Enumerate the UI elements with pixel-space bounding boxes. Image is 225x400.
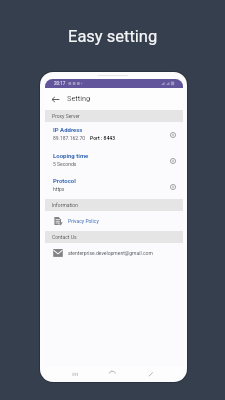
staticText: Proxy Server	[52, 113, 80, 119]
staticText: Privacy Policy	[68, 218, 99, 224]
button[interactable]: Edit IP Address	[162, 122, 183, 148]
staticText: https	[53, 186, 65, 192]
staticText: Setting	[67, 94, 91, 103]
staticText: 5 Seconds	[53, 161, 77, 167]
button[interactable]: IP Address	[45, 122, 183, 148]
staticText: 20:17	[54, 81, 66, 86]
staticText: Port : 8443	[90, 135, 116, 141]
button[interactable]: atenterprise.development@gmail.com	[45, 243, 183, 263]
staticText: Looping time	[53, 152, 89, 159]
button[interactable]: Looping time	[45, 148, 183, 174]
button[interactable]: Edit Looping time	[162, 148, 183, 174]
staticText: IP Address	[53, 126, 83, 133]
staticText: Easy setting	[68, 27, 158, 46]
staticText: atenterprise.development@gmail.com	[68, 250, 153, 256]
button[interactable]: Protocol	[45, 174, 183, 199]
staticText: Information	[52, 202, 78, 208]
button[interactable]: Edit Protocol	[162, 174, 183, 199]
staticText: Protocol	[53, 177, 76, 184]
button[interactable]: Back	[45, 88, 65, 110]
button[interactable]: Privacy Policy	[45, 211, 183, 231]
staticText: Contact Us	[52, 234, 77, 240]
staticText: 89.187.162.70	[53, 135, 86, 141]
